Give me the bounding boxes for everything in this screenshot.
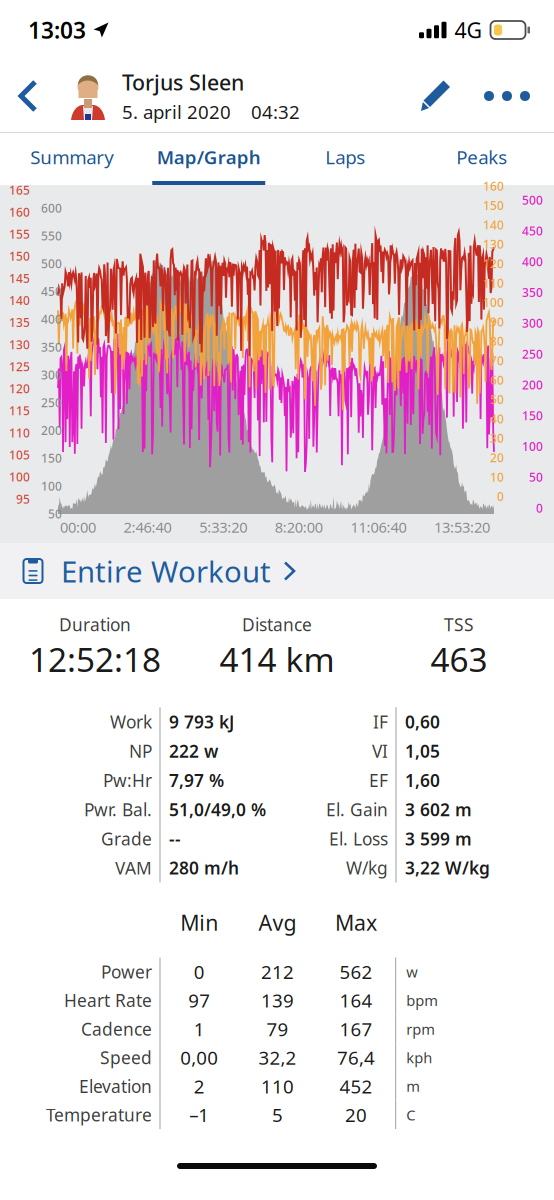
staticText: 50 [48, 506, 62, 522]
staticText: 30 [490, 430, 504, 446]
staticText: Torjus Sleen [122, 68, 244, 96]
staticText: 105 [9, 447, 30, 463]
staticText: El. Gain [326, 798, 388, 821]
staticText: IF [373, 710, 388, 733]
staticText: 0 [194, 959, 205, 984]
staticText: Duration [59, 613, 131, 636]
staticText: 135 [9, 314, 30, 330]
staticText: 51,0/49,0 % [169, 798, 266, 821]
staticText: 130 [483, 236, 504, 252]
staticText: 139 [261, 988, 294, 1013]
staticText: 11:06:40 [350, 517, 406, 537]
staticText: 160 [9, 204, 30, 220]
staticText: w [406, 962, 418, 981]
button[interactable]: Summary [4, 133, 140, 185]
staticText: Grade [101, 827, 152, 850]
staticText: 100 [9, 469, 30, 485]
staticText: 110 [261, 1074, 294, 1099]
staticText: 100 [41, 478, 62, 494]
staticText: 8:20:00 [275, 517, 323, 537]
staticText: 200 [41, 422, 62, 438]
staticText: 80 [490, 333, 504, 349]
staticText: 200 [522, 377, 543, 393]
staticText: 165 [9, 182, 30, 198]
staticText: 167 [339, 1017, 372, 1041]
staticText: 5 [272, 1102, 283, 1127]
staticText: Pw:Hr [103, 769, 152, 792]
staticText: 150 [41, 450, 62, 466]
staticText: Map/Graph [157, 145, 261, 169]
staticText: 400 [522, 254, 543, 269]
staticText: 3 599 m [405, 827, 472, 850]
staticText: 0 [497, 488, 504, 504]
staticText: 110 [9, 425, 30, 441]
staticText: 5. april 2020 [122, 99, 231, 124]
button[interactable]: Map/Graph [140, 133, 277, 185]
staticText: 280 m/h [169, 856, 239, 879]
staticText: 155 [9, 226, 30, 242]
staticText: 550 [41, 228, 62, 244]
staticText: 500 [522, 192, 543, 208]
button[interactable]: Peaks [413, 133, 550, 185]
staticText: Speed [100, 1046, 152, 1069]
staticText: -- [169, 827, 181, 850]
staticText: bpm [406, 991, 438, 1010]
staticText: Max [335, 908, 377, 937]
staticText: 400 [41, 311, 62, 327]
staticText: 1,60 [405, 769, 440, 792]
staticText: 110 [483, 275, 504, 291]
staticText: 79 [266, 1017, 288, 1041]
staticText: 145 [9, 270, 30, 286]
staticText: 97 [188, 988, 210, 1013]
staticText: 5:33:20 [199, 517, 247, 537]
staticText: 9 793 kJ [169, 710, 234, 733]
staticText: 140 [9, 292, 30, 308]
button[interactable]: Entire Workout [0, 543, 554, 599]
staticText: 250 [41, 395, 62, 410]
staticText: 120 [9, 381, 30, 397]
staticText: 70 [490, 353, 504, 368]
staticText: 1,05 [405, 740, 440, 763]
staticText: m [406, 1076, 420, 1096]
staticText: 250 [522, 346, 543, 362]
button[interactable]: More [475, 63, 539, 129]
staticText: 150 [483, 197, 504, 213]
staticText: 90 [490, 314, 504, 330]
staticText: Min [180, 908, 218, 937]
staticText: 76,4 [337, 1045, 375, 1070]
staticText: rpm [406, 1019, 435, 1039]
staticText: 150 [9, 248, 30, 264]
staticText: 95 [16, 491, 30, 507]
staticText: 40 [490, 411, 504, 427]
staticText: 100 [483, 294, 504, 310]
staticText: 7,97 % [169, 769, 224, 792]
staticText: 32,2 [258, 1045, 296, 1070]
staticText: Peaks [456, 145, 507, 169]
staticText: Laps [325, 145, 365, 169]
staticText: Elevation [79, 1075, 152, 1098]
staticText: 450 [522, 223, 543, 239]
button[interactable]: Laps [277, 133, 413, 185]
staticText: TSS [444, 613, 474, 636]
staticText: 00:00 [60, 517, 96, 537]
staticText: 150 [522, 408, 543, 423]
staticText: Power [101, 960, 152, 983]
staticText: 300 [522, 315, 543, 331]
staticText: 125 [9, 359, 30, 374]
staticText: kph [406, 1048, 432, 1067]
staticText: 0,00 [180, 1045, 218, 1070]
staticText: NP [129, 740, 152, 763]
staticText: VAM [115, 856, 152, 879]
staticText: 12:52:18 [29, 637, 161, 681]
staticText: 50 [529, 469, 543, 485]
staticText: 115 [9, 403, 30, 419]
staticText: 120 [483, 256, 504, 271]
staticText: Cadence [81, 1017, 152, 1040]
staticText: 2 [194, 1074, 205, 1099]
staticText: EF [369, 769, 388, 792]
button[interactable]: Edit [409, 63, 463, 129]
staticText: 450 [41, 283, 62, 299]
staticText: 04:32 [251, 99, 300, 124]
staticText: 600 [41, 200, 62, 216]
button[interactable]: Back [6, 63, 50, 129]
